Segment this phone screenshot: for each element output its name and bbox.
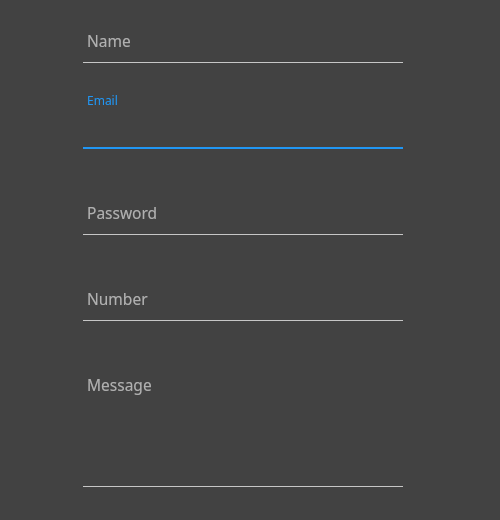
button[interactable]: Password [83, 187, 403, 235]
staticText: Number [87, 288, 148, 309]
staticText: Message [87, 374, 152, 395]
button[interactable]: Number [83, 273, 403, 321]
staticText: Email [87, 92, 118, 108]
button[interactable]: Email [83, 89, 403, 149]
button[interactable]: Message [83, 359, 403, 487]
button[interactable]: Name [83, 15, 403, 63]
staticText: Password [87, 202, 158, 223]
staticText: Name [87, 30, 131, 51]
